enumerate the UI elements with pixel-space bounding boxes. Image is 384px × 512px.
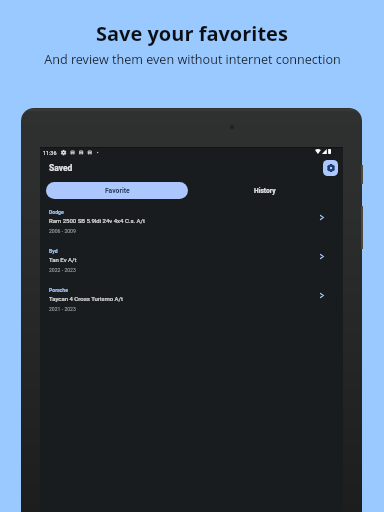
staticText: Ram 2500 SB 5.9ldi 24v 4x4 C.s. A/t — [49, 217, 145, 224]
button[interactable]: History — [191, 182, 338, 199]
staticText: History — [254, 187, 276, 195]
staticText: Tan Ev A/t — [49, 256, 77, 263]
staticText: 2006 - 2009 — [49, 228, 76, 234]
button[interactable]: Favorite — [46, 182, 188, 199]
button[interactable]: Settings — [323, 160, 338, 176]
staticText: 11:36 — [43, 150, 57, 156]
button[interactable]: Byd — [40, 245, 343, 284]
button[interactable]: Dodge — [40, 206, 343, 245]
staticText: 2021 - 2023 — [49, 306, 76, 312]
staticText: Byd — [49, 248, 58, 254]
staticText: Dodge — [49, 209, 64, 215]
staticText: Taycan 4 Cross Turismo A/t — [49, 295, 123, 302]
staticText: Favorite — [105, 187, 130, 195]
staticText: Saved — [49, 163, 73, 173]
staticText: 2022 - 2023 — [49, 267, 76, 273]
button[interactable]: Porsche — [40, 284, 343, 323]
staticText: And review them even without internet co… — [44, 51, 341, 68]
staticText: Porsche — [49, 287, 68, 293]
staticText: Save your favorites — [96, 20, 288, 47]
